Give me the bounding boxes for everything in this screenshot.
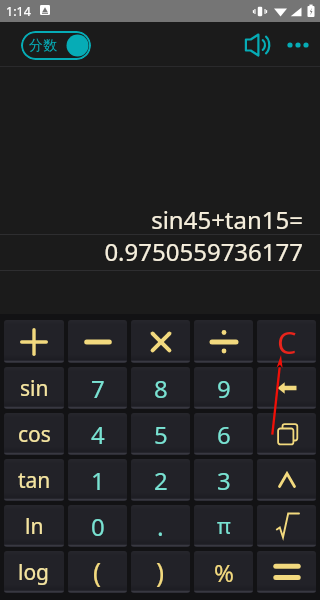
staticText: 0 [91,510,105,543]
staticText: 2 [154,464,168,497]
button[interactable]: Backspace [257,367,316,409]
staticText: ( [93,554,102,591]
staticText: 6 [217,418,231,451]
button[interactable]: cos [4,413,64,455]
button[interactable]: 9 [194,367,253,409]
button[interactable]: Divide [194,320,253,363]
button[interactable]: 分数 [21,31,91,60]
staticText: 1 [91,464,105,497]
button[interactable]: ( [68,551,127,593]
button[interactable]: Equals [257,551,316,593]
button[interactable]: More options [281,28,314,61]
button[interactable]: Plus [4,320,64,363]
staticText: 0.9750559736177 [104,235,303,268]
button[interactable]: 7 [68,367,127,409]
button[interactable]: Multiply [131,320,190,363]
staticText: sin [20,374,49,403]
button[interactable]: π [194,505,253,547]
button[interactable]: Square root [257,505,316,547]
staticText: 分数 [29,37,57,55]
staticText: ) [156,554,165,591]
button[interactable]: sin [4,367,64,409]
staticText: % [214,556,234,589]
staticText: π [217,512,231,541]
staticText: tan [18,466,51,495]
staticText: 3 [217,464,231,497]
staticText: log [18,558,50,587]
button[interactable]: 6 [194,413,253,455]
staticText: 9 [217,372,231,405]
staticText: 8 [154,372,168,405]
button[interactable]: 8 [131,367,190,409]
staticText: . [157,509,164,543]
staticText: ln [25,512,44,541]
button[interactable]: 1 [68,459,127,501]
button[interactable]: log [4,551,64,593]
button[interactable]: ln [4,505,64,547]
button[interactable]: 2 [131,459,190,501]
staticText: C [277,321,297,363]
button[interactable]: C [257,320,316,363]
button[interactable]: 5 [131,413,190,455]
button[interactable]: . [131,505,190,547]
button[interactable]: Minus [68,320,127,363]
button[interactable]: Copy [257,413,316,455]
button[interactable]: 0 [68,505,127,547]
staticText: 4 [91,418,105,451]
button[interactable]: Sound [240,28,273,61]
button[interactable]: 3 [194,459,253,501]
button[interactable]: ) [131,551,190,593]
button[interactable]: Power [257,459,316,501]
staticText: 5 [154,418,168,451]
button[interactable]: % [194,551,253,593]
staticText: sin45+tan15= [151,203,303,236]
staticText: cos [18,420,51,449]
button[interactable]: tan [4,459,64,501]
staticText: 7 [91,372,105,405]
staticText: 1:14 [6,3,31,20]
button[interactable]: 4 [68,413,127,455]
